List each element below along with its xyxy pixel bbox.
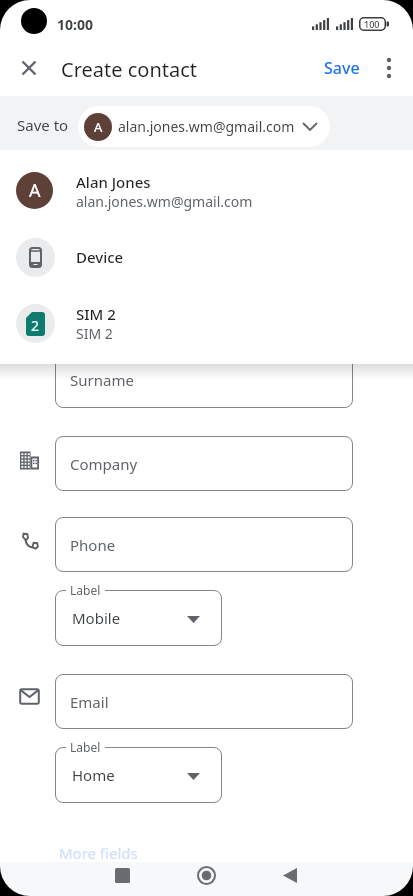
button[interactable] <box>283 868 297 883</box>
staticText: Save <box>324 57 360 79</box>
staticText: A <box>29 178 41 203</box>
staticText: 2 <box>31 316 40 335</box>
staticText: Home <box>72 765 115 785</box>
button[interactable]: Surname <box>55 352 353 408</box>
staticText: Save to <box>17 115 69 135</box>
button[interactable]: Email <box>55 674 353 729</box>
button[interactable]: More fields <box>59 843 138 863</box>
button[interactable]: Device <box>0 224 413 290</box>
staticText: SIM 2 <box>76 324 113 343</box>
staticText: Label <box>70 739 101 755</box>
staticText: Label <box>70 582 101 598</box>
button[interactable] <box>197 866 216 885</box>
staticText: Surname <box>70 370 134 390</box>
button[interactable]: 2 <box>0 290 413 356</box>
button[interactable]: Phone <box>55 517 353 572</box>
button[interactable]: A <box>78 106 330 147</box>
staticText: A <box>94 118 103 136</box>
staticText: 100 <box>364 18 380 30</box>
button[interactable]: A <box>0 158 413 224</box>
staticText: Company <box>70 454 138 474</box>
staticText: SIM 2 <box>76 304 116 324</box>
button[interactable]: Mobile <box>55 590 222 646</box>
staticText: Phone <box>70 535 116 555</box>
staticText: 10:00 <box>57 15 93 34</box>
button[interactable] <box>115 868 130 883</box>
staticText: Mobile <box>72 608 121 628</box>
button[interactable]: Home <box>55 747 222 803</box>
button[interactable] <box>377 56 401 80</box>
staticText: alan.jones.wm@gmail.com <box>76 192 253 211</box>
button[interactable]: Company <box>55 436 353 491</box>
staticText: alan.jones.wm@gmail.com <box>118 117 295 136</box>
staticText: Alan Jones <box>76 172 151 192</box>
staticText: Email <box>70 692 109 712</box>
staticText: Create contact <box>61 56 198 83</box>
staticText: Device <box>76 247 124 267</box>
button[interactable]: Save <box>318 54 366 82</box>
button[interactable] <box>18 57 40 79</box>
